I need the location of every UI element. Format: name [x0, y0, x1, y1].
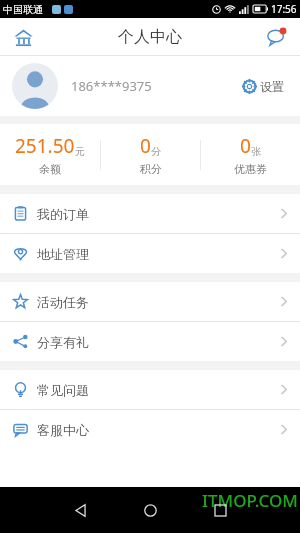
staticText: 地址管理 — [37, 246, 89, 262]
staticText: 客服中心 — [37, 422, 89, 438]
staticText: 我的订单 — [37, 206, 89, 222]
staticText: 设置 — [260, 79, 284, 94]
button[interactable]: 0 — [201, 124, 300, 185]
button[interactable]: 分享有礼 — [0, 322, 300, 361]
staticText: 元 — [75, 145, 85, 158]
button[interactable]: Messages — [262, 22, 292, 52]
button[interactable]: Home — [138, 498, 162, 522]
button[interactable]: 设置 — [239, 75, 288, 98]
button[interactable]: 活动任务 — [0, 282, 300, 321]
staticText: 0 — [240, 133, 251, 159]
button[interactable]: 常见问题 — [0, 370, 300, 409]
staticText: 中国联通 — [3, 3, 43, 16]
staticText: 积分 — [140, 162, 162, 176]
staticText: 分 — [151, 145, 161, 158]
button[interactable]: 251.50 — [0, 124, 100, 185]
staticText: ITMOP.COM — [202, 489, 298, 512]
staticText: 251.50 — [15, 133, 75, 159]
button[interactable]: Back — [68, 498, 92, 522]
staticText: 个人中心 — [118, 27, 182, 47]
staticText: 0 — [140, 133, 151, 159]
button[interactable]: Recent apps — [208, 498, 232, 522]
staticText: 186****9375 — [71, 77, 152, 95]
button[interactable]: Home — [8, 22, 38, 52]
button[interactable]: 0 — [101, 124, 200, 185]
button[interactable]: 客服中心 — [0, 410, 300, 449]
button[interactable]: 我的订单 — [0, 194, 300, 233]
staticText: 余额 — [39, 162, 61, 176]
button[interactable]: 地址管理 — [0, 234, 300, 273]
staticText: 常见问题 — [37, 382, 89, 398]
staticText: 17:56 — [271, 2, 297, 16]
staticText: 分享有礼 — [37, 334, 89, 350]
staticText: 活动任务 — [37, 294, 89, 310]
staticText: 优惠券 — [234, 162, 267, 176]
staticText: 张 — [251, 145, 261, 158]
